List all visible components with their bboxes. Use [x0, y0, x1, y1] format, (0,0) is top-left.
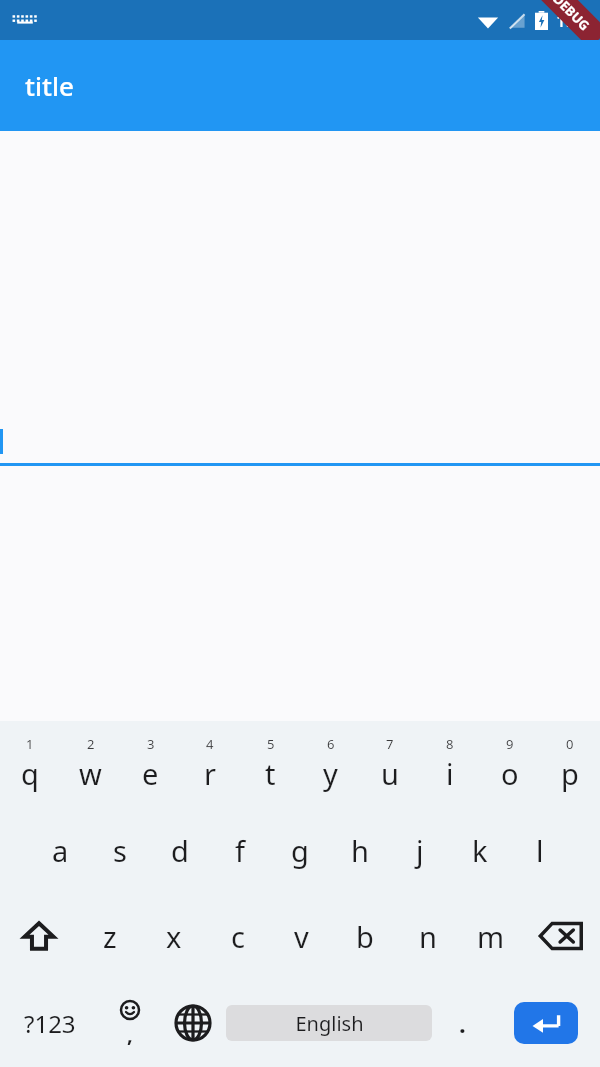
staticText: g [291, 831, 309, 870]
staticText: , [127, 1021, 133, 1048]
button[interactable]: n [396, 893, 459, 979]
staticText: r [204, 754, 216, 793]
staticText: 8 [446, 735, 454, 753]
button[interactable]: 3 [120, 721, 180, 807]
staticText: m [477, 917, 505, 956]
staticText: o [501, 754, 519, 793]
staticText: 4 [206, 735, 214, 753]
staticText: u [381, 754, 399, 793]
staticText: 5 [267, 735, 275, 753]
button[interactable]: Backspace [522, 893, 600, 979]
staticText: DEBUG [549, 0, 594, 34]
button[interactable]: m [459, 893, 522, 979]
button[interactable]: j [390, 807, 450, 893]
button[interactable]: z [78, 893, 142, 979]
staticText: p [561, 754, 579, 793]
button[interactable]: g [270, 807, 330, 893]
staticText: h [351, 831, 369, 870]
staticText: 1:06 [556, 9, 590, 32]
button[interactable]: 9 [480, 721, 540, 807]
staticText: l [536, 831, 544, 870]
staticText: x [166, 917, 182, 956]
button[interactable]: 0 [540, 721, 600, 807]
staticText: ?123 [24, 1007, 76, 1040]
staticText: a [52, 831, 69, 870]
staticText: d [171, 831, 189, 870]
staticText: e [142, 754, 159, 793]
button[interactable]: English [226, 1005, 432, 1041]
staticText: c [231, 917, 245, 956]
button[interactable]: 5 [240, 721, 300, 807]
button[interactable]: b [333, 893, 396, 979]
staticText: 0 [566, 735, 574, 753]
button[interactable]: 2 [60, 721, 120, 807]
button[interactable]: v [270, 893, 333, 979]
staticText: 7 [386, 735, 394, 753]
button[interactable] [0, 418, 600, 468]
button[interactable]: ?123 [0, 979, 100, 1067]
button[interactable]: l [510, 807, 570, 893]
button[interactable]: a [30, 807, 90, 893]
button[interactable]: Shift [0, 893, 78, 979]
staticText: k [472, 831, 488, 870]
button[interactable]: 1 [0, 721, 60, 807]
button[interactable]: k [450, 807, 510, 893]
button[interactable]: c [206, 893, 270, 979]
staticText: 6 [327, 735, 335, 753]
staticText: n [419, 917, 437, 956]
staticText: . [459, 1007, 466, 1040]
button[interactable]: f [210, 807, 270, 893]
button[interactable]: Enter [514, 1002, 578, 1044]
staticText: y [323, 754, 338, 793]
staticText: f [235, 831, 245, 870]
button[interactable]: h [330, 807, 390, 893]
staticText: w [79, 754, 102, 793]
staticText: title [25, 68, 74, 103]
staticText: English [295, 1010, 364, 1037]
button[interactable]: Change language [160, 979, 226, 1067]
staticText: t [265, 754, 276, 793]
staticText: 2 [87, 735, 95, 753]
staticText: s [113, 831, 127, 870]
staticText: q [21, 754, 39, 793]
button[interactable]: 6 [300, 721, 360, 807]
button[interactable]: d [150, 807, 210, 893]
staticText: i [446, 754, 454, 793]
staticText: j [416, 831, 424, 870]
button[interactable]: s [90, 807, 150, 893]
staticText: v [294, 917, 309, 956]
button[interactable]: 7 [360, 721, 420, 807]
button[interactable]: . [432, 979, 492, 1067]
staticText: b [356, 917, 374, 956]
staticText: 1 [26, 735, 34, 753]
staticText: z [103, 917, 117, 956]
button[interactable]: Emoji and comma [100, 979, 160, 1067]
button[interactable]: 8 [420, 721, 480, 807]
staticText: 9 [506, 735, 514, 753]
button[interactable]: 4 [180, 721, 240, 807]
button[interactable]: x [142, 893, 206, 979]
staticText: 3 [147, 735, 155, 753]
